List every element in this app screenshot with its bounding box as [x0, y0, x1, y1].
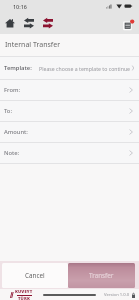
button[interactable]: To:: [0, 101, 139, 121]
staticText: Cancel: [25, 271, 45, 280]
button[interactable]: Menu: [121, 15, 137, 31]
button[interactable]: Internal transfer: [43, 18, 53, 28]
staticText: From:: [4, 86, 21, 94]
staticText: TÜRK: [18, 296, 30, 300]
button[interactable]: Template:: [0, 57, 139, 79]
staticText: Note:: [4, 149, 20, 157]
button[interactable]: Amount:: [0, 122, 139, 142]
staticText: 10:16: [13, 3, 27, 10]
staticText: Transfer: [89, 271, 114, 280]
button[interactable]: Home: [5, 18, 15, 28]
button[interactable]: Note:: [0, 143, 139, 163]
button[interactable]: Transfer: [68, 263, 135, 288]
staticText: Internal Transfer: [5, 40, 61, 50]
staticText: Version 1.0.0: [104, 292, 130, 298]
staticText: Amount:: [4, 128, 28, 136]
staticText: Template:: [4, 64, 32, 72]
staticText: Please choose a template to continue: [39, 65, 131, 72]
button[interactable]: From:: [0, 80, 139, 100]
button[interactable]: Cancel: [2, 263, 68, 288]
staticText: To:: [4, 107, 12, 115]
staticText: KUVEYT: [15, 289, 33, 295]
button[interactable]: Transfers: [24, 18, 34, 28]
